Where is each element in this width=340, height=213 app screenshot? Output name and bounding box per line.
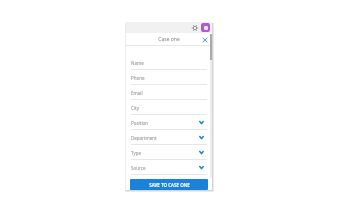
button[interactable]: SAVE TO CASE ONE <box>130 179 208 190</box>
button[interactable]: Email <box>126 85 212 100</box>
staticText: Name <box>131 60 144 66</box>
button[interactable]: City <box>126 100 212 115</box>
staticText: SAVE TO CASE ONE <box>149 182 190 188</box>
staticText: Department <box>131 135 157 141</box>
button[interactable]: Close <box>201 36 209 44</box>
staticText: Type <box>131 150 142 156</box>
staticText: Email <box>131 90 143 96</box>
button[interactable]: Department <box>126 130 212 145</box>
button[interactable]: Settings <box>190 23 199 32</box>
button[interactable]: Account <box>201 23 210 32</box>
staticText: Position <box>131 120 149 126</box>
staticText: Phone <box>131 75 145 81</box>
button[interactable]: Name <box>126 55 212 70</box>
button[interactable]: Type <box>126 145 212 160</box>
button[interactable]: Position <box>126 115 212 130</box>
button[interactable]: Source <box>126 160 212 175</box>
button[interactable]: Phone <box>126 70 212 85</box>
staticText: Source <box>131 165 146 171</box>
staticText: City <box>131 105 139 111</box>
staticText: Case one <box>126 36 212 43</box>
